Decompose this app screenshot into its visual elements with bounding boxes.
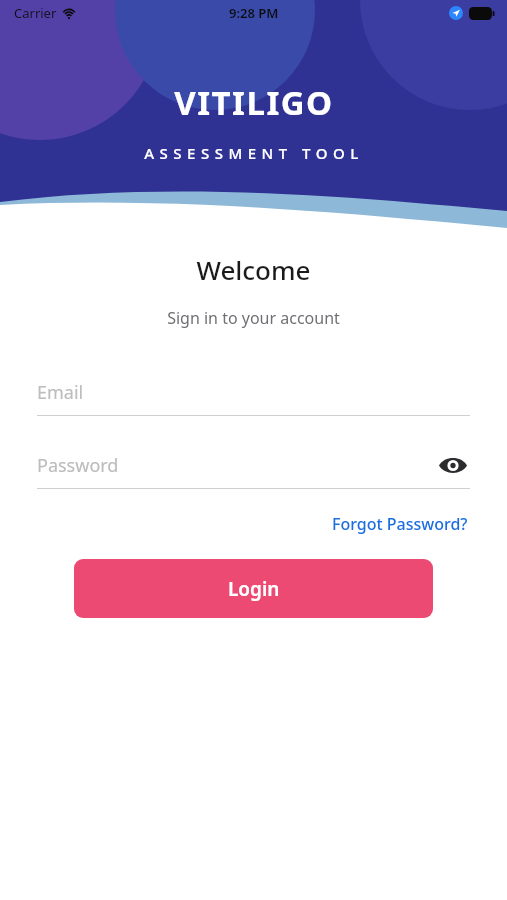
staticText: Password	[37, 453, 119, 478]
staticText: Carrier	[14, 4, 57, 22]
button[interactable]: Forgot Password?	[330, 509, 470, 539]
staticText: Login	[228, 576, 280, 602]
button[interactable]: Password	[37, 446, 470, 484]
button[interactable]: Email	[37, 373, 470, 411]
staticText: 9:28 PM	[229, 4, 279, 22]
button[interactable]: Login	[74, 559, 433, 618]
staticText: Sign in to your account	[167, 307, 340, 329]
button[interactable]: Show password	[436, 448, 470, 482]
staticText: Email	[37, 380, 84, 405]
staticText: Forgot Password?	[332, 513, 468, 535]
staticText: Welcome	[196, 252, 311, 287]
staticText: ASSESSMENT TOOL	[144, 143, 364, 163]
staticText: VITILIGO	[174, 80, 334, 125]
